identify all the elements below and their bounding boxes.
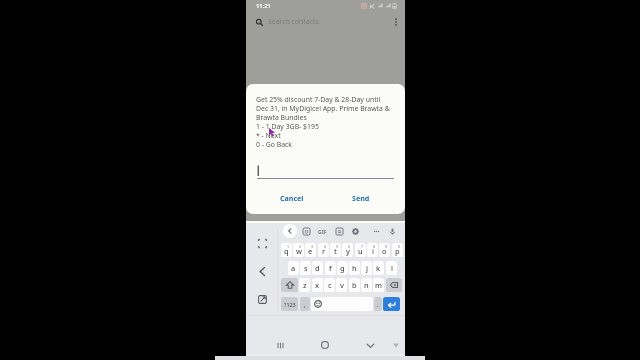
button[interactable]: 9 — [379, 243, 390, 257]
button[interactable]: g — [337, 261, 348, 275]
staticText: k — [376, 263, 381, 273]
button[interactable]: . — [374, 297, 382, 311]
button[interactable]: 7 — [355, 243, 366, 257]
button[interactable]: Search — [251, 14, 268, 30]
button[interactable]: More options — [369, 224, 383, 238]
staticText: r — [322, 246, 326, 256]
staticText: z — [303, 280, 307, 290]
staticText: Search contacts — [268, 17, 319, 26]
button[interactable]: 1 — [281, 243, 292, 257]
button[interactable]: More options — [388, 14, 404, 30]
button[interactable] — [257, 164, 394, 179]
staticText: 1 - 1 Day 3GB- $195 — [256, 122, 319, 131]
staticText: 0 — [398, 244, 401, 249]
staticText: a — [291, 263, 296, 273]
button[interactable]: b — [349, 278, 360, 292]
staticText: e — [308, 246, 313, 256]
staticText: s — [304, 263, 308, 273]
button[interactable]: Resize keyboard — [251, 234, 273, 252]
staticText: l — [391, 263, 393, 273]
staticText: 2 — [299, 244, 302, 249]
button[interactable]: Home — [317, 337, 333, 353]
staticText: 8 — [373, 244, 376, 249]
button[interactable]: Back — [362, 337, 378, 353]
button[interactable]: j — [361, 261, 372, 275]
staticText: v — [340, 280, 344, 290]
staticText: . — [377, 300, 379, 309]
staticText: x — [315, 280, 320, 290]
button[interactable]: 5 — [330, 243, 341, 257]
staticText: p — [395, 246, 400, 256]
button[interactable]: a — [288, 261, 299, 275]
staticText: 4 — [324, 244, 327, 249]
button[interactable]: h — [349, 261, 360, 275]
staticText: 7 — [361, 244, 364, 249]
staticText: 3 — [311, 244, 314, 249]
button[interactable]: 4 — [318, 243, 329, 257]
button[interactable]: m — [373, 278, 384, 292]
button[interactable]: Enter — [383, 297, 400, 311]
button[interactable]: GIF — [315, 224, 329, 238]
staticText: 6 — [348, 244, 351, 249]
button[interactable]: Recent apps — [272, 337, 288, 353]
button[interactable]: 6 — [342, 243, 353, 257]
button[interactable]: k — [373, 261, 384, 275]
button[interactable]: Emoji — [311, 297, 324, 311]
staticText: y — [346, 246, 350, 256]
button[interactable]: Send — [351, 191, 371, 205]
button[interactable]: ?123 — [281, 297, 298, 311]
button[interactable]: Keyboard active — [391, 340, 401, 350]
staticText: , — [304, 300, 306, 309]
staticText: h — [352, 263, 357, 273]
staticText: Send — [352, 193, 370, 203]
staticText: n — [364, 280, 369, 290]
button[interactable]: f — [325, 261, 336, 275]
button[interactable]: x — [312, 278, 323, 292]
button[interactable]: s — [300, 261, 311, 275]
staticText: o — [382, 246, 387, 256]
staticText: i — [372, 246, 374, 256]
button[interactable]: Shift — [281, 278, 298, 292]
staticText: m — [375, 280, 382, 290]
button[interactable]: 2 — [293, 243, 304, 257]
staticText: u — [358, 246, 363, 256]
button[interactable]: 3 — [305, 243, 316, 257]
button[interactable]: n — [361, 278, 372, 292]
button[interactable]: Collapse toolbar — [283, 224, 297, 238]
button[interactable]: v — [336, 278, 347, 292]
button[interactable]: Clipboard — [332, 224, 346, 238]
staticText: f — [329, 263, 332, 273]
staticText: Get 25% discount 7-Day & 28-Day until De… — [256, 95, 390, 122]
button[interactable]: Settings — [348, 224, 362, 238]
button[interactable]: l — [386, 261, 397, 275]
staticText: q — [284, 246, 289, 256]
staticText: 5 — [336, 244, 339, 249]
button[interactable]: Search contacts — [268, 13, 326, 30]
staticText: 9 — [385, 244, 388, 249]
button[interactable]: Voice input — [385, 224, 399, 238]
staticText: 11:21 — [256, 2, 271, 10]
staticText: GIF — [318, 228, 327, 235]
button[interactable]: c — [324, 278, 335, 292]
staticText: ?123 — [284, 301, 296, 308]
staticText: b — [352, 280, 357, 290]
staticText: c — [328, 280, 332, 290]
staticText: * - Next — [256, 131, 281, 140]
button[interactable]: Backspace — [386, 278, 402, 292]
button[interactable]: Floating keyboard — [251, 290, 273, 308]
staticText: 1 — [287, 244, 290, 249]
staticText: 0 - Go Back — [256, 140, 293, 149]
button[interactable]: Back — [251, 262, 273, 280]
staticText: j — [366, 263, 368, 273]
button[interactable]: Stickers — [299, 224, 313, 238]
button[interactable]: 0 — [392, 243, 403, 257]
button[interactable]: , — [300, 297, 310, 311]
button[interactable]: Cancel — [280, 191, 304, 205]
staticText: g — [340, 263, 345, 273]
staticText: Cancel — [280, 193, 304, 203]
staticText: t — [334, 246, 337, 256]
button[interactable]: 8 — [367, 243, 378, 257]
button[interactable]: d — [312, 261, 323, 275]
button[interactable]: z — [299, 278, 310, 292]
